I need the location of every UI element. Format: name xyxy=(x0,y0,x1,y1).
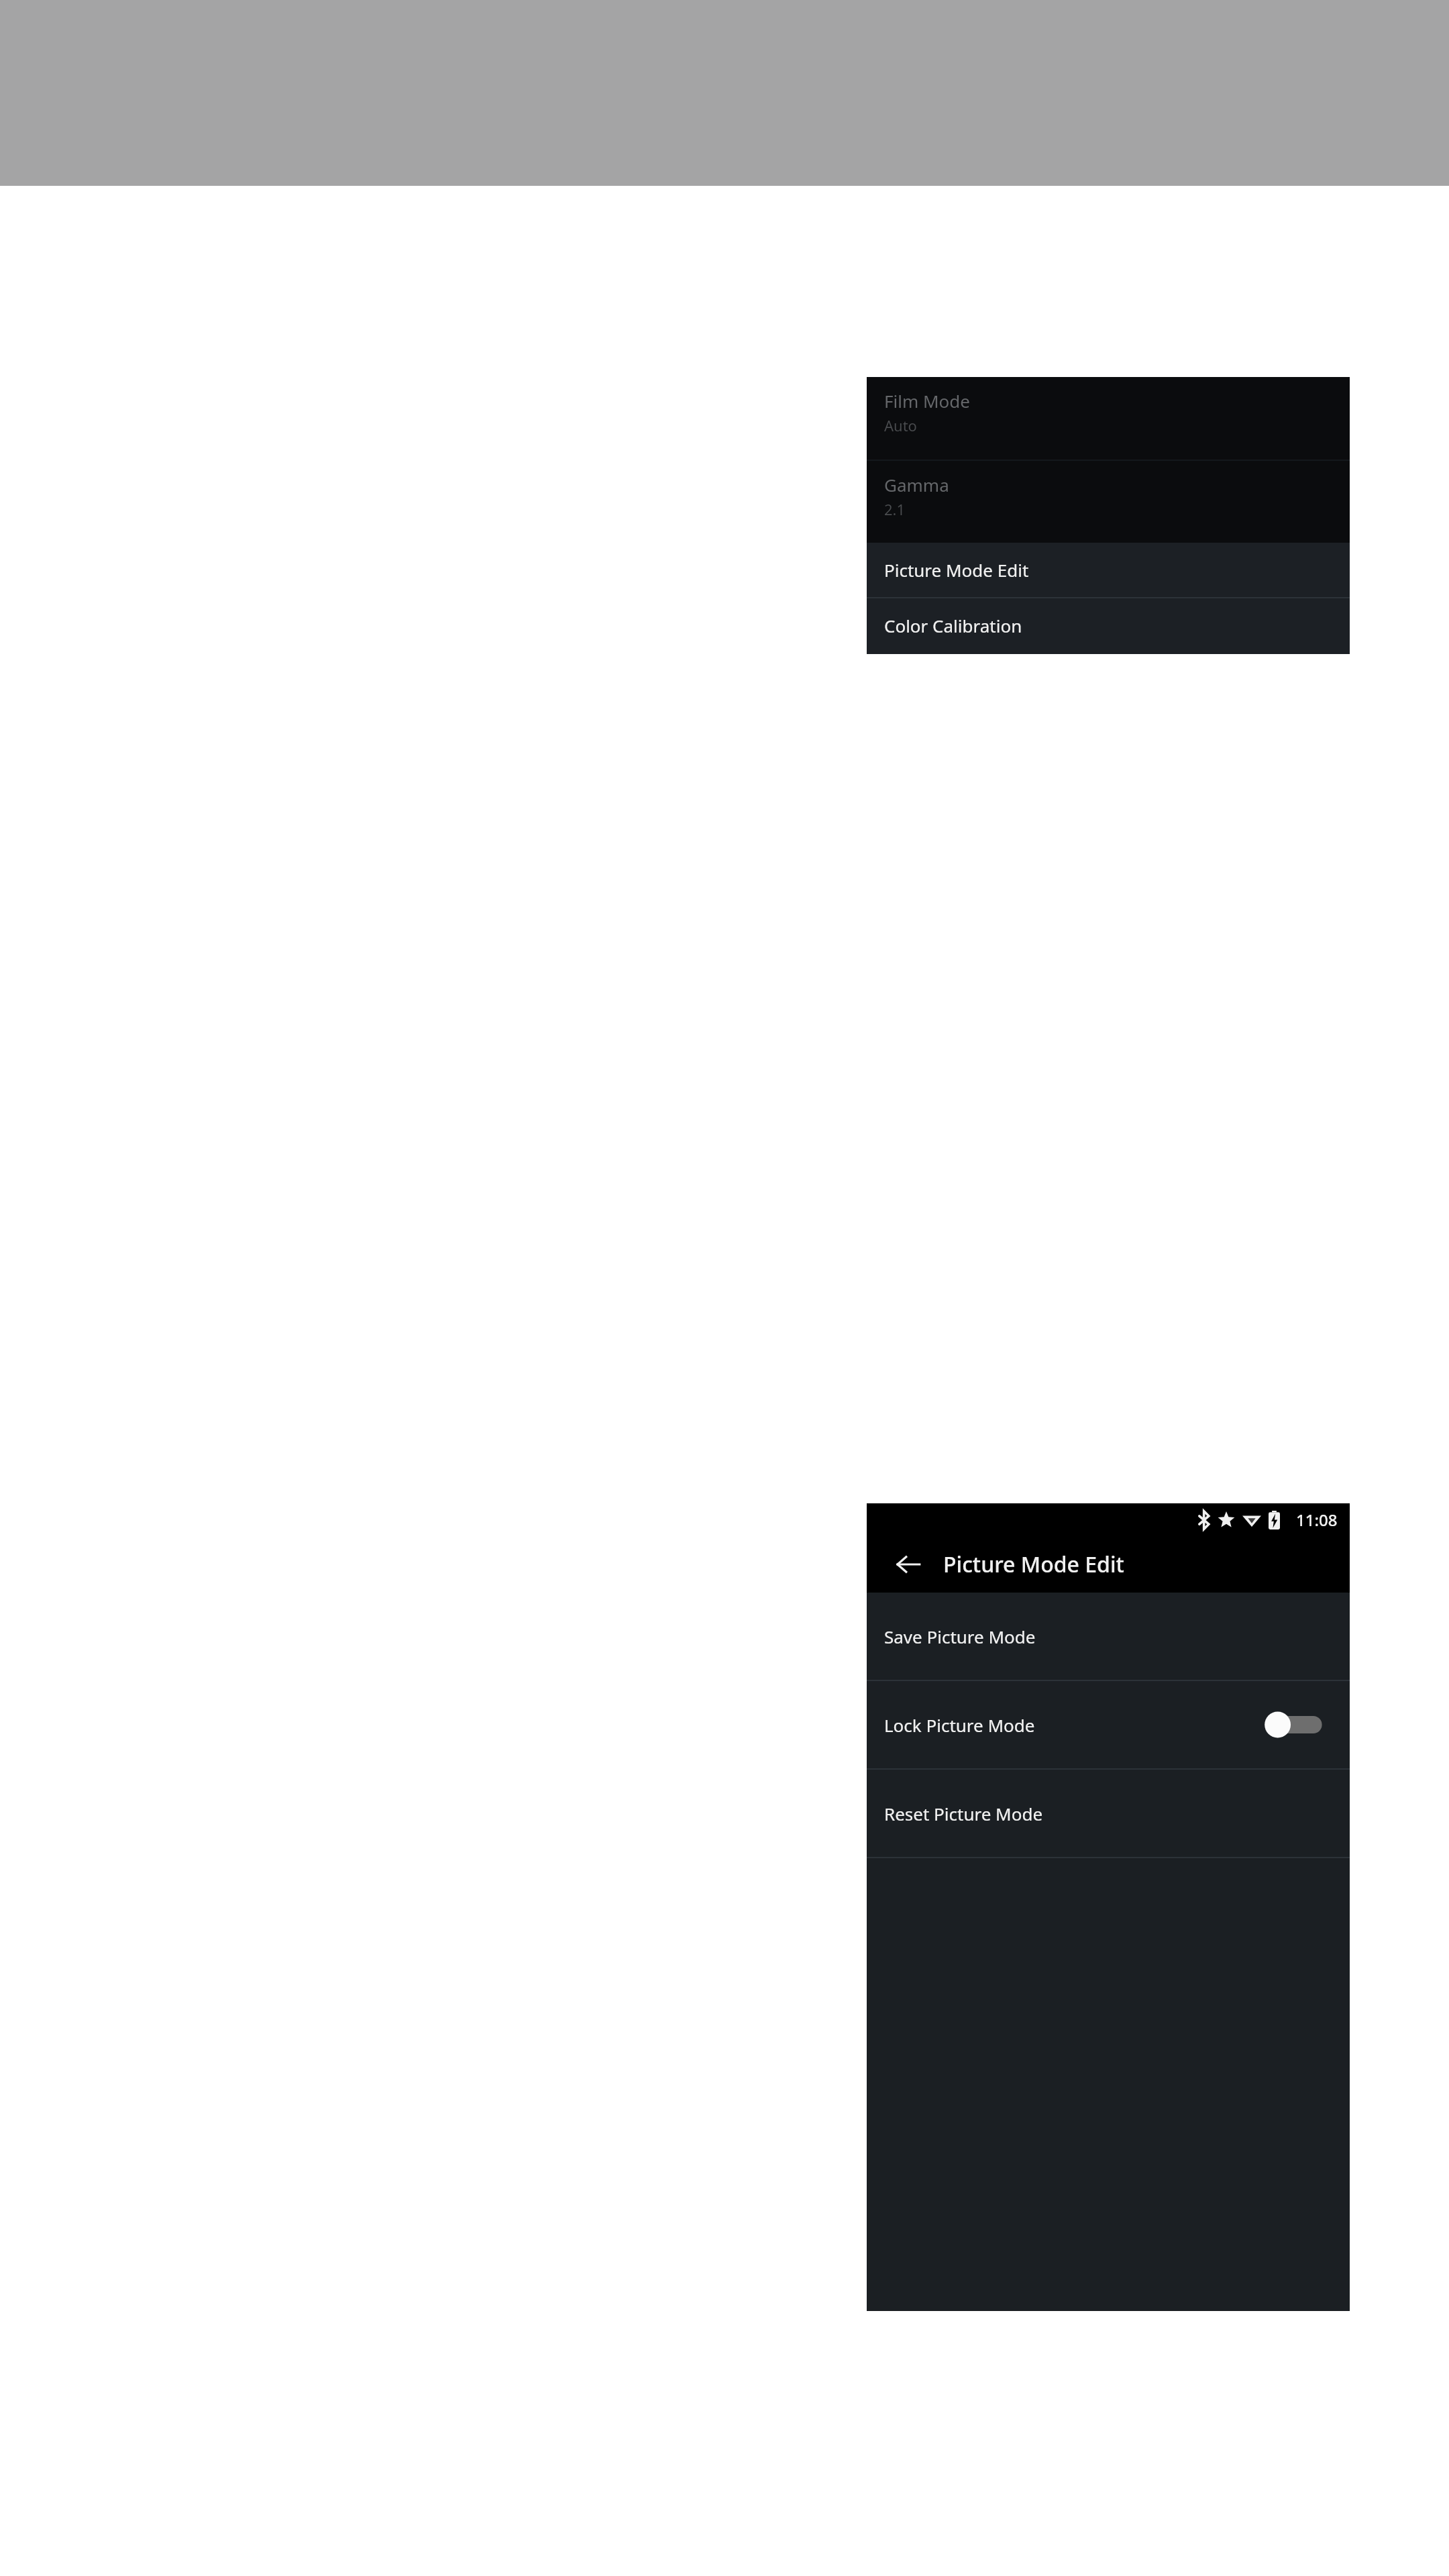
staticText: 2.1 xyxy=(884,499,906,519)
button[interactable]: Lock Picture Mode xyxy=(1258,1701,1332,1749)
button[interactable]: Reset Picture Mode xyxy=(867,1770,1350,1857)
staticText: Picture Mode Edit xyxy=(884,558,1029,582)
staticText: Save Picture Mode xyxy=(884,1625,1036,1648)
button[interactable]: Save Picture Mode xyxy=(867,1593,1350,1680)
staticText: 11:08 xyxy=(1296,1509,1338,1531)
button[interactable]: Picture Mode Edit xyxy=(867,543,1350,597)
button[interactable]: Color Calibration xyxy=(867,598,1350,653)
staticText: Lock Picture Mode xyxy=(884,1713,1035,1737)
button[interactable]: Lock Picture Mode xyxy=(867,1681,1350,1768)
staticText: Film Mode xyxy=(884,389,970,413)
staticText: Gamma xyxy=(884,473,949,496)
button[interactable]: Film Mode xyxy=(867,377,1350,460)
staticText: Color Calibration xyxy=(884,614,1022,637)
staticText: Auto xyxy=(884,415,917,435)
staticText: Picture Mode Edit xyxy=(943,1550,1124,1579)
button[interactable]: Gamma xyxy=(867,461,1350,543)
button[interactable]: Back xyxy=(891,1547,926,1582)
staticText: Reset Picture Mode xyxy=(884,1802,1043,1825)
